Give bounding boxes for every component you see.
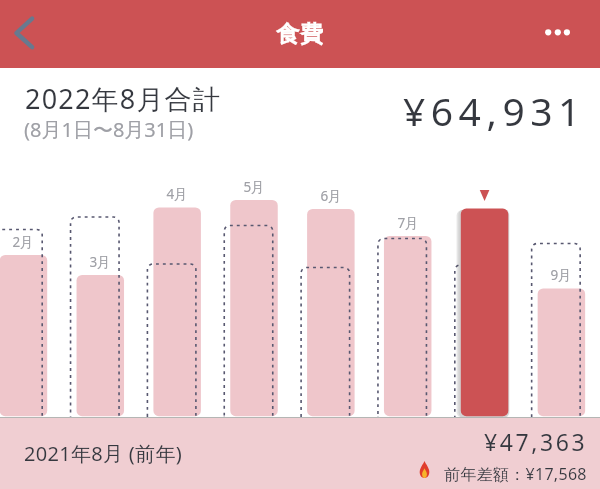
staticText: 前年差額：¥17,568 (444, 463, 587, 485)
staticText: 2022年8月合計 (25, 80, 222, 117)
staticText: 食費 (276, 19, 323, 49)
button[interactable]: More options (544, 0, 600, 68)
staticText: (8月1日〜8月31日) (24, 116, 194, 143)
staticText: 4月 (157, 185, 197, 203)
staticText: 7月 (388, 214, 428, 232)
staticText: 2月 (3, 233, 43, 251)
staticText: 9月 (541, 266, 581, 284)
staticText: 5月 (234, 178, 274, 196)
staticText: ¥47,363 (484, 426, 588, 457)
staticText: ¥64,931 (403, 84, 586, 137)
staticText: 2021年8月 (前年) (24, 440, 182, 467)
staticText: 3月 (80, 253, 120, 271)
button[interactable]: Back (0, 0, 56, 68)
staticText: 6月 (311, 187, 351, 205)
